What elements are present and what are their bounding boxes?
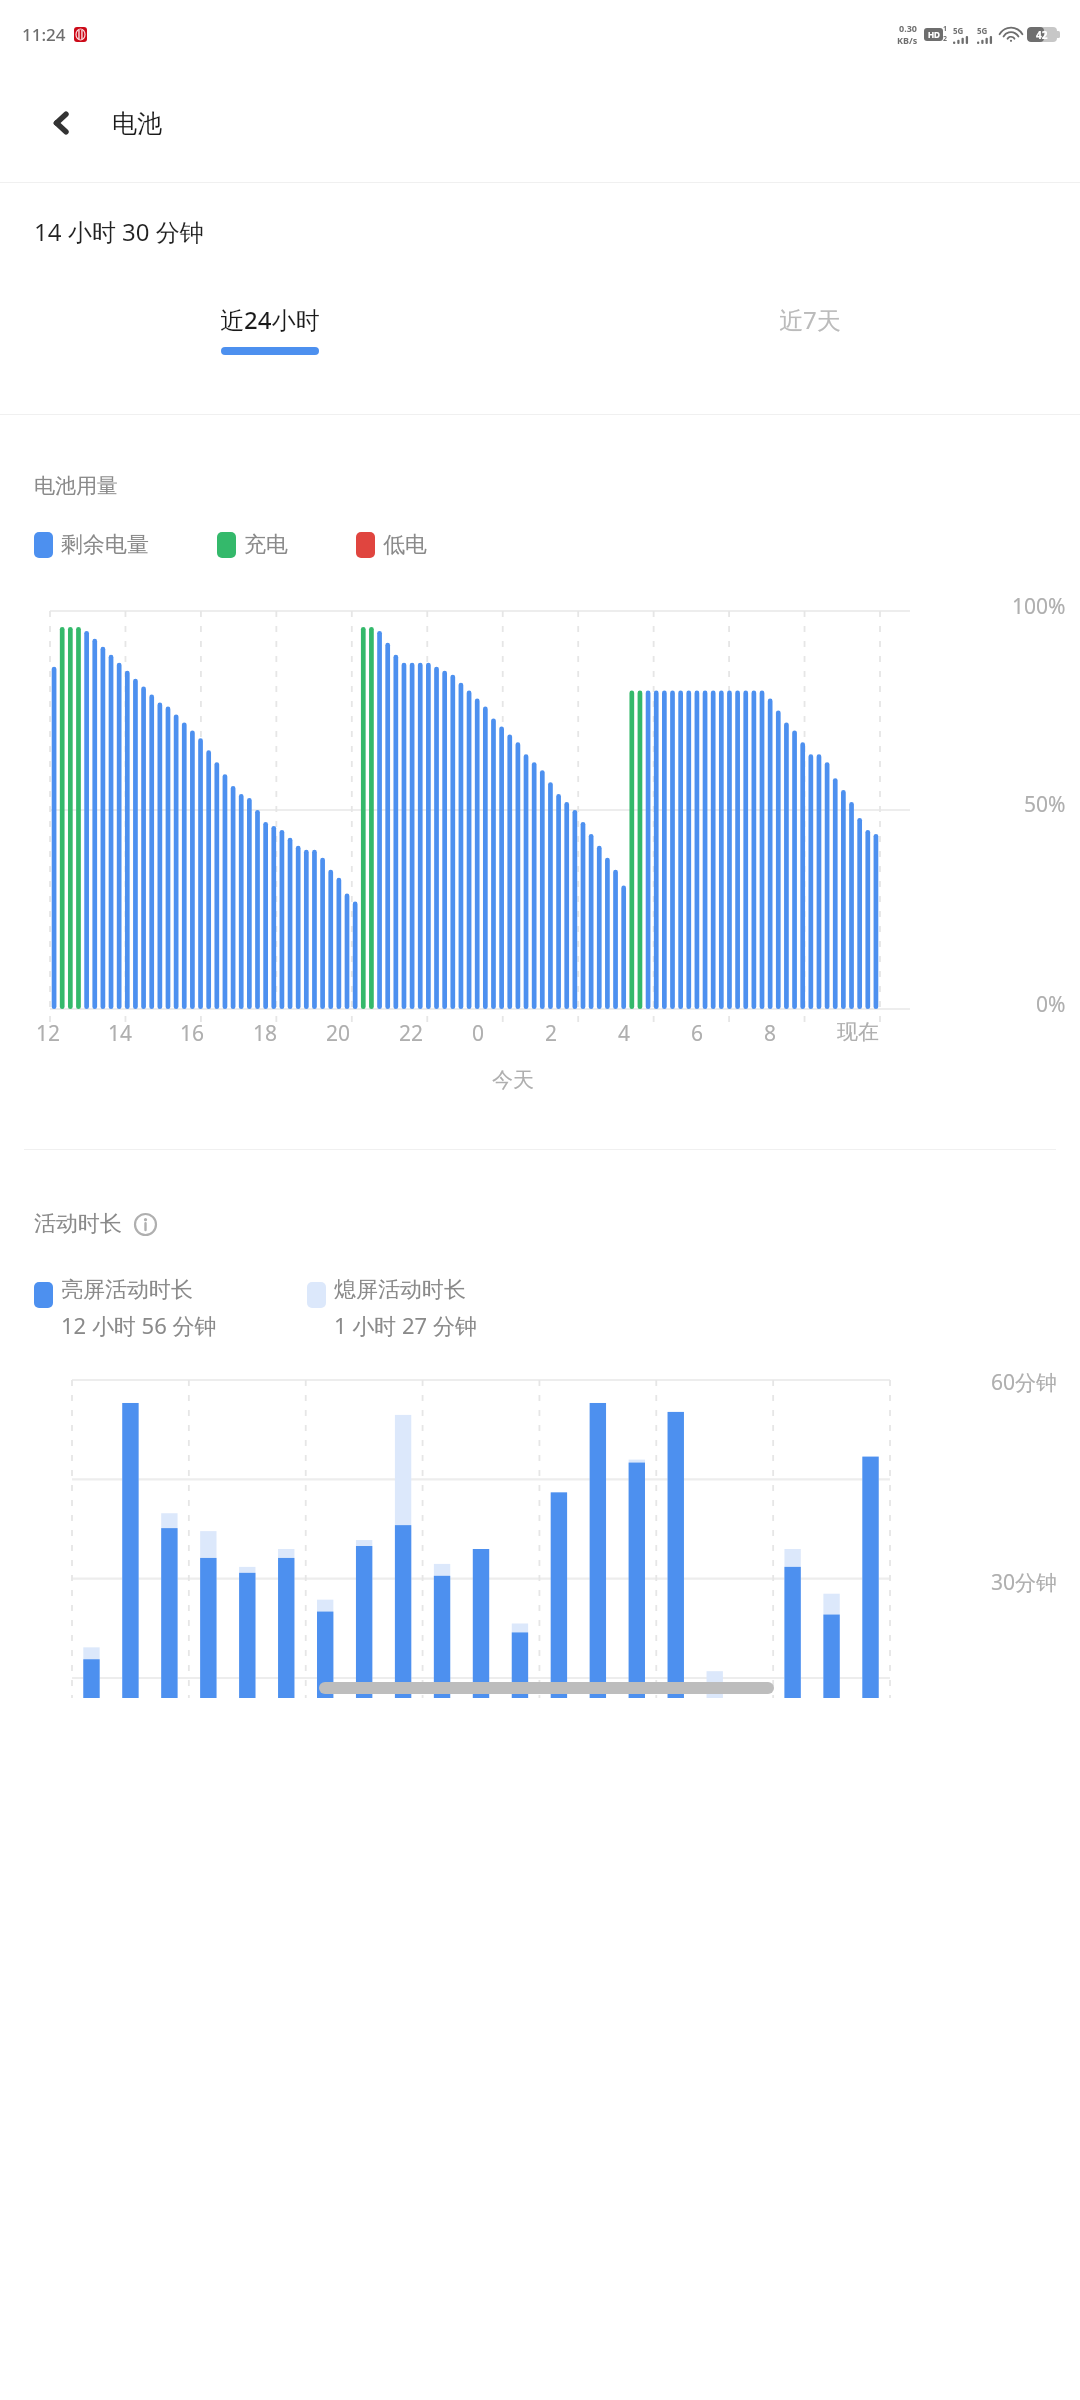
button[interactable]: Info	[132, 1211, 158, 1237]
button[interactable]: Back	[34, 95, 90, 151]
staticText: 5G	[953, 25, 964, 36]
staticText: 0.30	[899, 22, 917, 34]
staticText: 16	[180, 1019, 205, 1048]
staticText: HD	[928, 29, 940, 40]
staticText: 今天	[492, 1067, 534, 1093]
staticText: 亮屏活动时长	[61, 1276, 193, 1304]
staticText: 20	[326, 1019, 351, 1048]
staticText: 2	[545, 1019, 558, 1048]
staticText: 12	[36, 1019, 61, 1048]
button[interactable]: 近24小时	[0, 279, 540, 414]
staticText: 50%	[1024, 790, 1066, 819]
staticText: 充电	[244, 531, 288, 559]
staticText: 18	[253, 1019, 278, 1048]
staticText: 5G	[977, 25, 988, 36]
staticText: 现在	[837, 1019, 879, 1045]
staticText: 42	[1036, 28, 1048, 42]
staticText: 4	[618, 1019, 631, 1048]
staticText: KB/s	[897, 34, 918, 46]
staticText: 电池用量	[34, 473, 118, 499]
staticText: 熄屏活动时长	[334, 1276, 466, 1304]
staticText: 6	[691, 1019, 704, 1048]
staticText: 剩余电量	[61, 531, 149, 559]
staticText: 30分钟	[991, 1568, 1058, 1597]
staticText: 0%	[1036, 990, 1066, 1019]
staticText: 低电	[383, 531, 427, 559]
staticText: 14	[108, 1019, 133, 1048]
staticText: 12 小时 56 分钟	[61, 1310, 217, 1340]
staticText: 2	[943, 34, 948, 44]
staticText: 近24小时	[220, 303, 320, 336]
staticText: 近7天	[779, 303, 841, 336]
staticText: 8	[764, 1019, 777, 1048]
button[interactable]: 近7天	[540, 279, 1080, 414]
staticText: 60分钟	[991, 1368, 1058, 1397]
staticText: 1 小时 27 分钟	[334, 1310, 477, 1340]
staticText: 22	[399, 1019, 424, 1048]
staticText: 活动时长	[34, 1210, 122, 1238]
staticText: 11:24	[22, 23, 66, 46]
staticText: 0	[472, 1019, 485, 1048]
staticText: 100%	[1012, 592, 1066, 621]
staticText: 1	[943, 24, 948, 34]
staticText: 14 小时 30 分钟	[34, 215, 204, 248]
staticText: 电池	[112, 108, 162, 139]
